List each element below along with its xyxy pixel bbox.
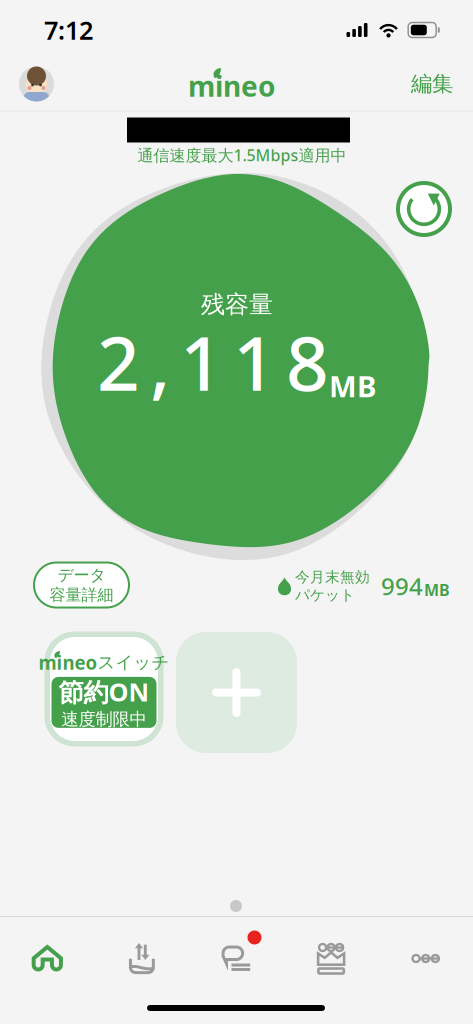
staticText: データ (57, 565, 105, 585)
staticText: MB (424, 579, 450, 600)
staticText: 7:12 (44, 13, 93, 47)
button[interactable]: mineo (44, 631, 163, 746)
staticText: スイッチ (97, 652, 169, 673)
button[interactable]: Refresh (398, 183, 450, 235)
button[interactable]: More (378, 917, 473, 990)
staticText: 994 (381, 570, 423, 602)
staticText: 残容量 (201, 290, 273, 319)
staticText: mineo (188, 67, 276, 105)
button[interactable]: データ (34, 562, 129, 607)
staticText: 速度制限中 (61, 709, 146, 730)
staticText: 今月末無効 (295, 568, 370, 586)
button[interactable]: Profile (19, 66, 54, 101)
button[interactable]: Data usage (95, 917, 189, 990)
staticText: 容量詳細 (49, 585, 113, 605)
staticText: 通信速度最大1.5Mbps適用中 (137, 144, 346, 166)
button[interactable]: 編集 (410, 67, 454, 101)
button[interactable]: Add (176, 632, 297, 753)
button[interactable]: Home (0, 917, 95, 990)
staticText: MB (329, 366, 377, 405)
staticText: 編集 (411, 71, 453, 97)
staticText: 2,118 (97, 312, 329, 411)
button[interactable]: Rewards (284, 917, 378, 990)
button[interactable]: Community (189, 917, 284, 990)
staticText: 節約ON (58, 675, 149, 708)
staticText: mineo (38, 650, 97, 675)
staticText: パケット (295, 586, 355, 604)
